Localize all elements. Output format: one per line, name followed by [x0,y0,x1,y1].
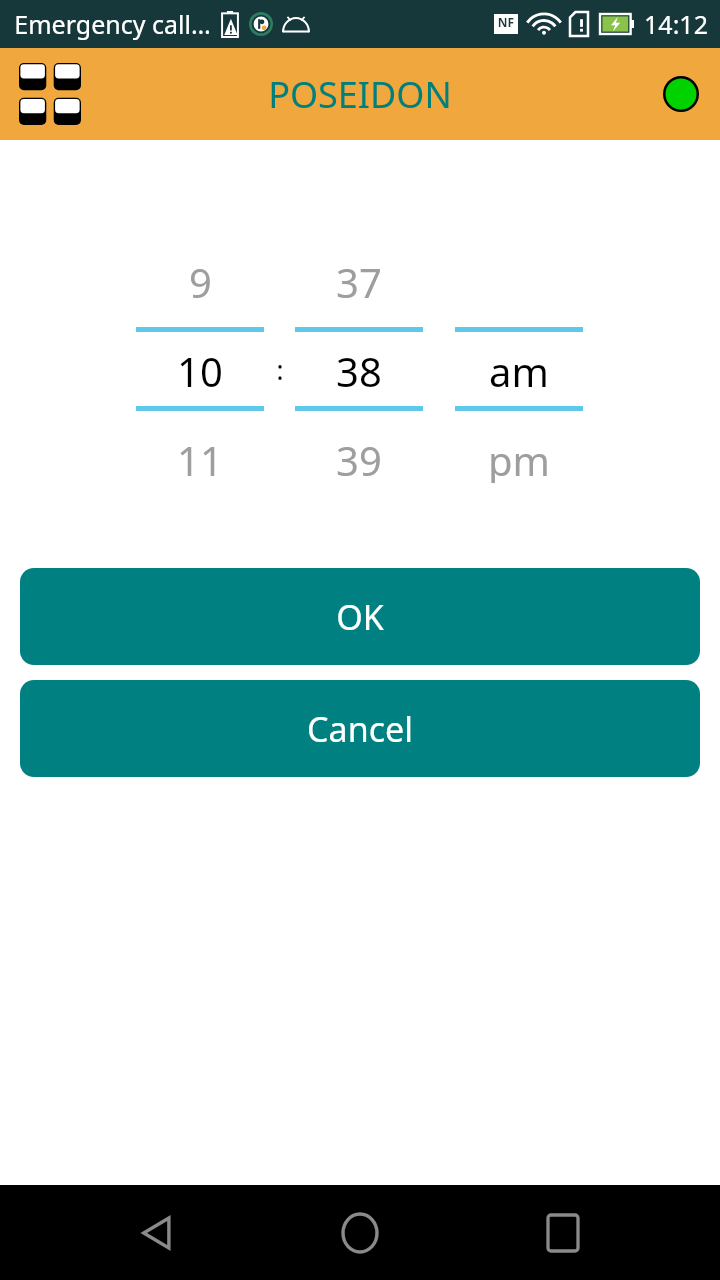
staticText: 39 [336,433,382,483]
button[interactable]: 39 [295,433,423,483]
button[interactable]: pm [455,433,583,483]
staticText: 10 [177,344,223,394]
button[interactable]: Menu [18,62,82,126]
button[interactable]: 9 [136,255,264,305]
button[interactable]: 11 [136,433,264,483]
staticText: : [276,350,284,388]
button[interactable]: Cancel [20,680,700,777]
staticText: 14:12 [644,7,708,41]
button[interactable]: Back [113,1188,203,1278]
button[interactable]: Home [315,1188,405,1278]
staticText: 9 [189,255,212,305]
staticText: 38 [336,344,382,394]
staticText: 37 [336,255,382,305]
staticText: pm [488,433,550,483]
staticText: OK [336,594,384,640]
staticText: Cancel [307,706,413,752]
button[interactable]: 37 [295,255,423,305]
staticText: am [489,344,549,394]
button[interactable]: 10 [136,344,264,394]
staticText: 11 [177,433,223,483]
button[interactable]: am [455,344,583,394]
button[interactable]: 38 [295,344,423,394]
staticText: Emergency call… [14,7,211,41]
button[interactable]: Recent apps [518,1188,608,1278]
button[interactable]: OK [20,568,700,665]
staticText: NFC [494,14,518,34]
staticText: POSEIDON [268,70,452,119]
button[interactable]: Status indicator [657,70,705,118]
